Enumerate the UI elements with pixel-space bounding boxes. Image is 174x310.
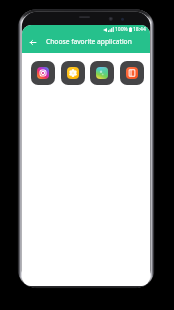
staticText: Choose favorite application bbox=[46, 37, 132, 46]
button[interactable]: Back bbox=[24, 33, 41, 52]
staticText: 18:44 bbox=[133, 26, 146, 33]
button[interactable]: Maps bbox=[90, 61, 114, 85]
staticText: 100% bbox=[115, 26, 128, 33]
button[interactable]: Reader bbox=[120, 61, 144, 85]
button[interactable]: Photo editor bbox=[61, 61, 85, 85]
button[interactable]: Instagram bbox=[31, 61, 55, 85]
